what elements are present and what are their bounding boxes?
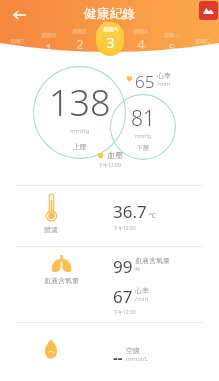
button[interactable]: 血液含氧量 xyxy=(0,247,219,322)
button[interactable]: 星期六 xyxy=(96,28,124,62)
button[interactable]: Recorder xyxy=(199,1,218,20)
staticText: 31 xyxy=(10,45,25,63)
staticText: 36.7 xyxy=(113,200,147,223)
staticText: 67 xyxy=(113,285,133,308)
staticText: 健康紀錄 xyxy=(0,5,219,21)
staticText: 體溫 xyxy=(44,225,58,234)
staticText: 星期一 xyxy=(164,32,179,38)
button[interactable]: 星期一 xyxy=(157,28,185,62)
staticText: 星期二 xyxy=(195,38,210,44)
staticText: 4 xyxy=(137,35,145,53)
staticText: 3 xyxy=(106,33,115,52)
staticText: -- xyxy=(113,347,123,367)
staticText: 下午12:00 xyxy=(113,225,136,232)
staticText: % xyxy=(135,265,140,273)
staticText: 81 xyxy=(131,104,155,133)
staticText: mmol/L xyxy=(126,355,148,363)
button[interactable]: 138 xyxy=(0,52,219,185)
staticText: 四月 xyxy=(0,21,219,30)
staticText: 2 xyxy=(76,35,84,53)
staticText: 下壓 xyxy=(137,144,149,152)
staticText: 65 xyxy=(135,70,155,93)
staticText: 上壓 xyxy=(73,142,87,151)
staticText: 星期三 xyxy=(10,38,25,44)
button[interactable]: 體溫 xyxy=(0,186,219,246)
staticText: 99 xyxy=(113,255,133,278)
staticText: 6 xyxy=(199,45,207,63)
staticText: 下午12:00 xyxy=(113,309,136,316)
staticText: 空腹 xyxy=(126,346,140,355)
staticText: 血液含氧量 xyxy=(44,276,79,285)
staticText: 5 xyxy=(168,39,176,57)
button[interactable]: 星期四 xyxy=(34,28,62,62)
staticText: 138 xyxy=(49,78,111,127)
staticText: mmHg xyxy=(135,133,152,140)
staticText: mmHg xyxy=(70,127,90,135)
staticText: 星期六 xyxy=(103,26,118,32)
staticText: 心率 xyxy=(135,286,149,295)
staticText: 心率 xyxy=(157,71,171,80)
staticText: 血液含氧量 xyxy=(135,256,170,265)
button[interactable]: Back xyxy=(6,2,32,28)
button[interactable]: 星期五 xyxy=(65,28,93,62)
staticText: 星期五 xyxy=(72,28,87,34)
staticText: 1 xyxy=(45,39,53,57)
staticText: 下午12:00 xyxy=(98,162,121,169)
staticText: ℃ xyxy=(149,211,156,221)
button[interactable]: 星期二 xyxy=(188,28,216,62)
staticText: 血壓 xyxy=(107,150,123,160)
staticText: 星期日 xyxy=(133,28,148,34)
staticText: /min xyxy=(157,80,171,88)
button[interactable]: -- xyxy=(0,323,219,379)
button[interactable]: 星期日 xyxy=(126,28,154,62)
staticText: /min xyxy=(135,295,149,303)
staticText: 星期四 xyxy=(41,32,56,38)
button[interactable]: 星期三 xyxy=(3,28,31,62)
